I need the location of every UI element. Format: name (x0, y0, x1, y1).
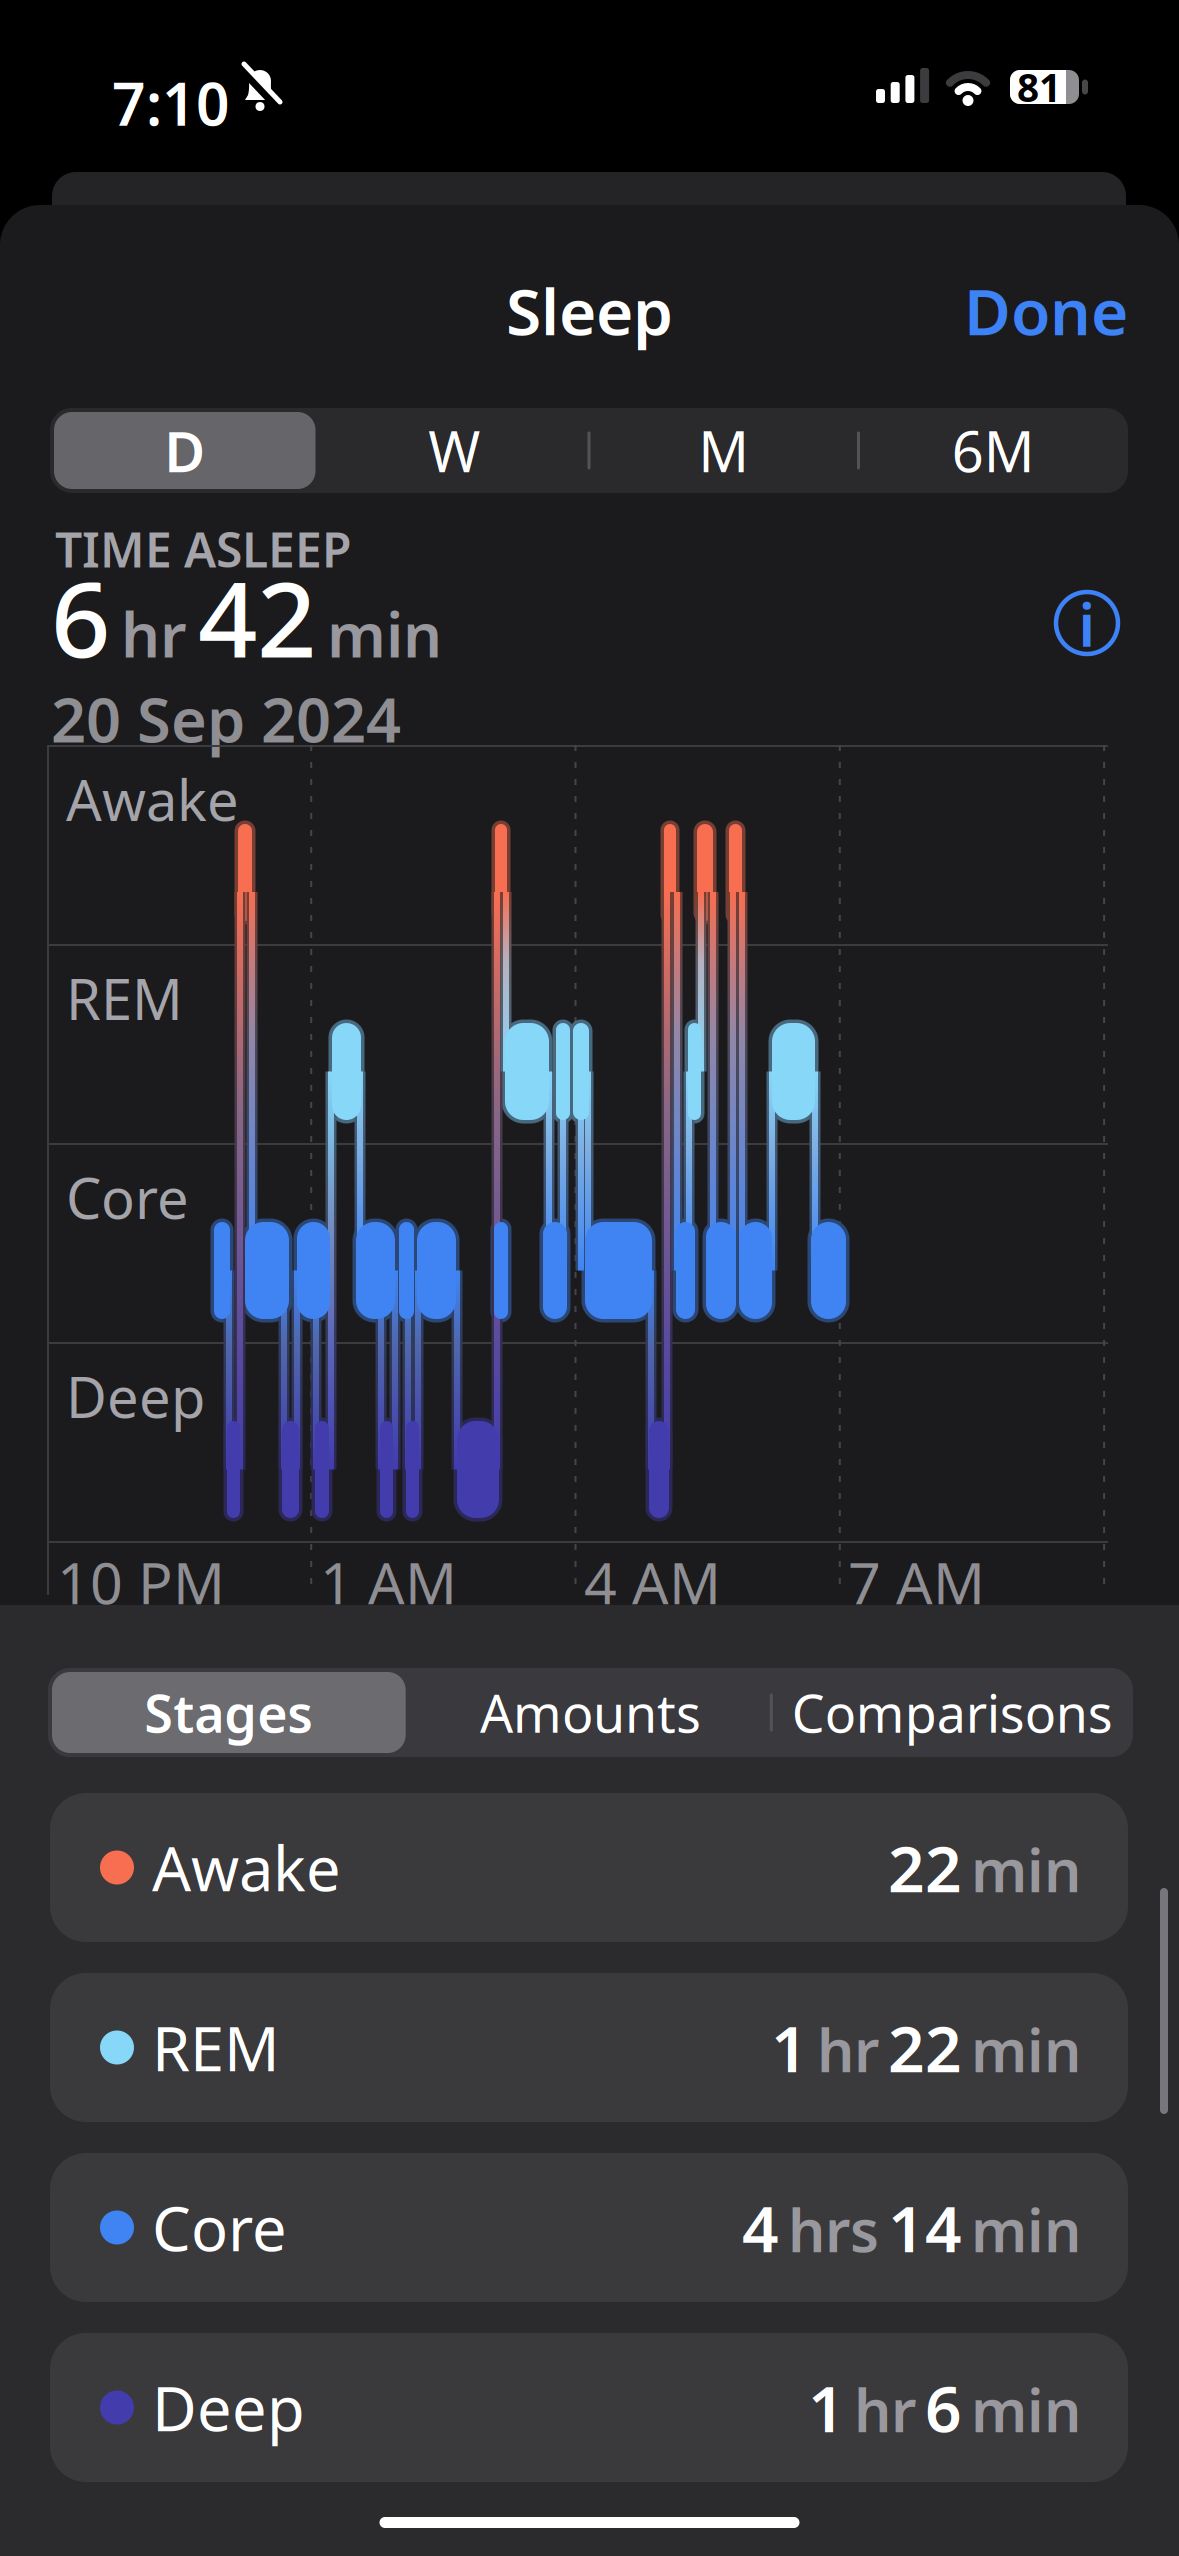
staticText: REM (66, 961, 183, 1035)
button[interactable]: REM (50, 1973, 1128, 2122)
staticText: min (971, 2191, 1081, 2268)
button[interactable]: i (1052, 588, 1122, 658)
staticText: 20 Sep 2024 (51, 678, 401, 759)
staticText: TIME ASLEEP (55, 517, 352, 581)
staticText: hr (854, 2371, 916, 2448)
staticText: M (698, 413, 749, 488)
staticText: hrs (788, 2191, 879, 2268)
staticText: 6 (925, 2365, 962, 2450)
button[interactable]: M (589, 408, 858, 493)
staticText: Comparisons (792, 1678, 1113, 1747)
staticText: 10 PM (57, 1544, 225, 1620)
staticText: 6M (952, 413, 1035, 488)
button[interactable]: Core (50, 2153, 1128, 2302)
staticText: 42 (198, 548, 316, 686)
staticText: hr (121, 593, 187, 674)
staticText: 81 (1017, 61, 1061, 113)
staticText: 1 (771, 2005, 808, 2090)
staticText: Awake (66, 762, 239, 836)
button[interactable]: Stages (48, 1668, 410, 1757)
staticText: min (971, 2011, 1081, 2088)
staticText: min (971, 2371, 1081, 2448)
button[interactable]: D (50, 408, 319, 493)
staticText: 4 AM (584, 1544, 721, 1620)
staticText: Deep (152, 2367, 305, 2448)
button[interactable]: Done (964, 268, 1128, 353)
staticText: W (428, 413, 480, 488)
staticText: Awake (152, 1827, 341, 1908)
staticText: 22 (888, 1825, 962, 1910)
staticText: 1 (808, 2365, 845, 2450)
staticText: 6 (51, 548, 110, 686)
staticText: REM (152, 2007, 280, 2088)
staticText: Done (964, 268, 1128, 353)
staticText: 22 (888, 2005, 962, 2090)
staticText: Core (66, 1160, 189, 1234)
staticText: i (1078, 585, 1095, 663)
staticText: 14 (888, 2185, 962, 2270)
staticText: 1 AM (320, 1544, 457, 1620)
staticText: min (327, 593, 442, 674)
button[interactable]: Awake (50, 1793, 1128, 1942)
staticText: Amounts (480, 1678, 701, 1747)
button[interactable]: 6M (858, 408, 1128, 493)
button[interactable]: Deep (50, 2333, 1128, 2482)
staticText: hr (817, 2011, 879, 2088)
staticText: Deep (66, 1359, 205, 1433)
staticText: 4 (742, 2185, 779, 2270)
button[interactable]: Amounts (410, 1668, 771, 1757)
staticText: Sleep (506, 268, 673, 353)
staticText: D (164, 413, 205, 488)
staticText: 7:10 (112, 64, 230, 142)
button[interactable]: W (319, 408, 589, 493)
staticText: min (971, 1831, 1081, 1908)
staticText: 7 AM (848, 1544, 985, 1620)
staticText: Stages (144, 1678, 313, 1747)
staticText: Core (152, 2187, 287, 2268)
button[interactable]: Comparisons (771, 1668, 1133, 1757)
